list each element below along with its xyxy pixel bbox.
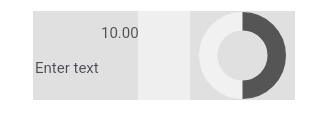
staticText: Enter text <box>35 59 99 77</box>
button[interactable]: 10.00 <box>33 11 138 100</box>
staticText: 10.00 <box>101 24 139 42</box>
button[interactable]: Progress, 50 percent <box>190 11 295 100</box>
